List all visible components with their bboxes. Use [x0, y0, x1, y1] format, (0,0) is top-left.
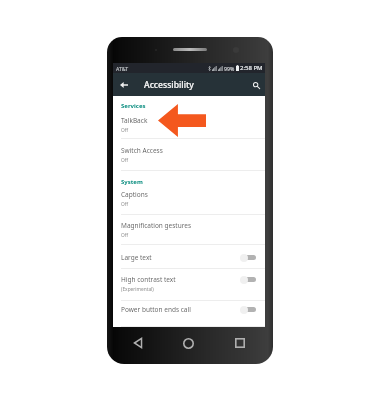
button[interactable]: TalkBack [113, 112, 265, 139]
button[interactable]: Navigate up [116, 77, 132, 93]
staticText: (Experimental) [121, 286, 154, 293]
staticText: Off [121, 201, 129, 208]
button[interactable]: Switch Access [113, 139, 265, 171]
button[interactable]: Magnification gestures [113, 215, 265, 245]
button[interactable]: Large text [113, 244, 265, 269]
staticText: Switch Access [121, 146, 163, 155]
staticText: Magnification gestures [121, 221, 192, 230]
staticText: Off [121, 157, 129, 164]
staticText: 2:58 PM [240, 64, 263, 72]
button[interactable]: Large text switch [240, 252, 256, 262]
staticText: System [121, 178, 143, 186]
staticText: TalkBack [121, 116, 148, 125]
button[interactable]: Search [248, 77, 264, 93]
button[interactable]: Home [163, 326, 214, 360]
button[interactable]: Back [113, 326, 163, 360]
staticText: Off [121, 232, 129, 239]
button[interactable]: Power button ends call switch [240, 304, 256, 314]
staticText: Power button ends call [121, 305, 191, 314]
button[interactable]: High contrast text switch [240, 274, 256, 284]
staticText: AT&T [116, 65, 129, 72]
staticText: Services [121, 102, 146, 110]
staticText: Captions [121, 190, 148, 199]
staticText: Large text [121, 253, 152, 262]
staticText: High contrast text [121, 275, 176, 284]
staticText: 99% [224, 65, 235, 72]
button[interactable]: Captions [113, 188, 265, 215]
staticText: Off [121, 127, 129, 134]
button[interactable]: High contrast text [113, 270, 265, 301]
button[interactable]: Power button ends call [113, 300, 265, 327]
button[interactable]: Recent apps [214, 326, 265, 360]
staticText: Accessibility [144, 79, 194, 91]
